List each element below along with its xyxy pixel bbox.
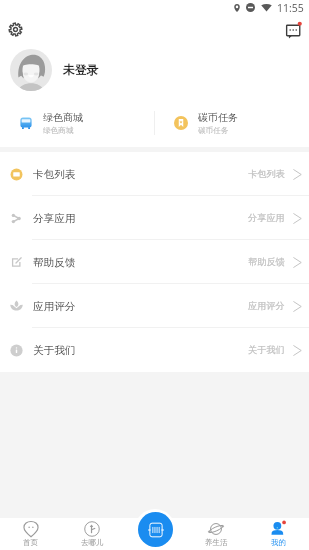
staticText: 碳币任务 xyxy=(198,111,238,124)
staticText: 去哪儿 xyxy=(81,538,104,547)
button[interactable]: 养生活 xyxy=(185,518,247,550)
staticText: 绿色商城 xyxy=(43,111,83,124)
staticText: 帮助反馈 xyxy=(248,256,285,268)
button[interactable]: 去哪儿 xyxy=(61,518,123,550)
staticText: 养生活 xyxy=(205,538,228,547)
staticText: 关于我们 xyxy=(248,344,285,356)
button[interactable]: 首页 xyxy=(0,518,61,550)
button[interactable]: 应用评分 xyxy=(0,284,309,328)
staticText: 帮助反馈 xyxy=(33,256,76,269)
button[interactable]: 我的 xyxy=(247,518,309,550)
staticText: 碳币任务 xyxy=(198,126,229,136)
staticText: 分享应用 xyxy=(248,212,285,224)
button[interactable]: Messages xyxy=(283,19,304,40)
button[interactable]: 未登录 xyxy=(0,44,309,96)
button[interactable]: 帮助反馈 xyxy=(0,240,309,284)
staticText: 关于我们 xyxy=(33,344,76,357)
staticText: 11:55 xyxy=(277,1,304,15)
button[interactable]: Scan code xyxy=(138,512,173,547)
staticText: 分享应用 xyxy=(33,212,76,225)
button[interactable]: 碳币任务 xyxy=(155,108,309,138)
staticText: 卡包列表 xyxy=(33,168,76,181)
staticText: 我的 xyxy=(271,538,286,547)
staticText: 绿色商城 xyxy=(43,126,74,136)
button[interactable]: 分享应用 xyxy=(0,196,309,240)
button[interactable]: Settings xyxy=(5,19,26,40)
staticText: 应用评分 xyxy=(33,300,76,313)
staticText: 未登录 xyxy=(63,63,99,78)
button[interactable]: 绿色商城 xyxy=(0,108,154,138)
button[interactable]: 关于我们 xyxy=(0,328,309,372)
button[interactable]: 卡包列表 xyxy=(0,152,309,196)
staticText: 卡包列表 xyxy=(248,168,285,180)
staticText: 应用评分 xyxy=(248,300,285,312)
staticText: 首页 xyxy=(23,538,38,547)
